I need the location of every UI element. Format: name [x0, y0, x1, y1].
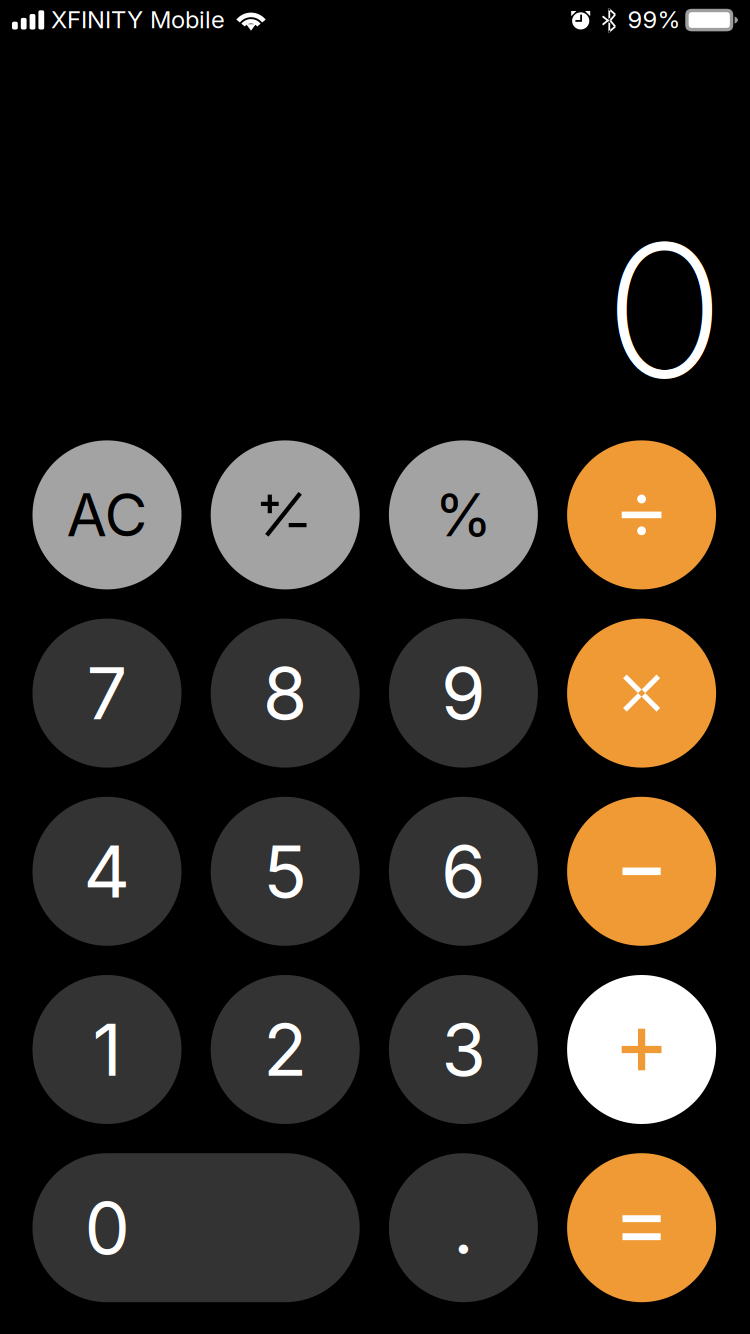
button[interactable]: 7: [32, 619, 181, 768]
button[interactable]: .: [389, 1153, 538, 1302]
staticText: 7: [86, 649, 127, 737]
staticText: .: [453, 1184, 474, 1271]
staticText: 99%: [627, 5, 680, 34]
button[interactable]: Plus: [567, 975, 716, 1124]
button[interactable]: Minus: [567, 797, 716, 946]
button[interactable]: 2: [211, 975, 360, 1124]
staticText: 0: [613, 200, 717, 419]
button[interactable]: 8: [211, 619, 360, 768]
staticText: 0: [611, 200, 715, 419]
button[interactable]: %: [389, 440, 538, 589]
staticText: 6: [441, 828, 486, 915]
button[interactable]: 6: [389, 797, 538, 946]
staticText: 5: [263, 828, 307, 915]
button[interactable]: 3: [389, 975, 538, 1124]
staticText: 8: [263, 649, 308, 737]
staticText: 0: [84, 1184, 129, 1271]
staticText: AC: [66, 479, 147, 550]
button[interactable]: 0: [32, 1153, 360, 1302]
button[interactable]: 5: [211, 797, 360, 946]
button[interactable]: 9: [389, 619, 538, 768]
staticText: 2: [263, 1006, 307, 1093]
staticText: 3: [441, 1006, 485, 1093]
staticText: XFINITY Mobile: [51, 5, 225, 34]
staticText: 9: [441, 649, 486, 737]
staticText: 1: [92, 1006, 121, 1093]
button[interactable]: Equals: [567, 1153, 716, 1302]
staticText: %: [434, 479, 492, 550]
button[interactable]: AC: [32, 440, 181, 589]
staticText: 0: [612, 201, 716, 421]
staticText: 4: [83, 828, 130, 915]
button[interactable]: Plus minus: [211, 440, 360, 589]
button[interactable]: 1: [32, 975, 181, 1124]
button[interactable]: Divide: [567, 440, 716, 589]
button[interactable]: 4: [32, 797, 181, 946]
button[interactable]: Multiply: [567, 619, 716, 768]
